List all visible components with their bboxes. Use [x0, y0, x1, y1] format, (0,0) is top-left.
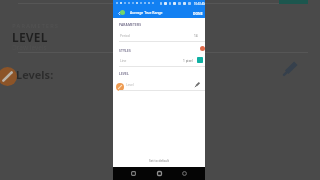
button[interactable]: Level colour	[116, 83, 124, 91]
button[interactable]: DONE	[192, 10, 204, 16]
button[interactable]: Home	[154, 168, 165, 179]
staticText: Line	[120, 59, 127, 63]
staticText: Levels:	[16, 67, 54, 82]
other: Edit	[281, 59, 300, 78]
staticText: PARAMETERS	[119, 23, 142, 27]
staticText: DONE	[193, 11, 203, 15]
staticText: STYLES	[119, 49, 131, 53]
staticText: Set to default	[149, 159, 170, 163]
button[interactable]: Set to default	[113, 155, 205, 166]
button[interactable]: Edit level	[194, 81, 201, 88]
staticText: LEVEL	[12, 29, 48, 45]
staticText: Period	[120, 34, 130, 38]
button[interactable]: Back	[128, 168, 139, 179]
staticText: Average True Range	[130, 10, 163, 15]
staticText: 1 pixel	[183, 59, 193, 63]
staticText: 10:53 AM	[194, 2, 205, 6]
staticText: Level	[126, 83, 134, 87]
staticText: 14	[194, 34, 198, 38]
staticText: LEVEL	[119, 72, 129, 76]
button[interactable]: Back	[114, 8, 124, 18]
button[interactable]: Recents	[179, 168, 190, 179]
button[interactable]: Line colour	[197, 57, 203, 63]
